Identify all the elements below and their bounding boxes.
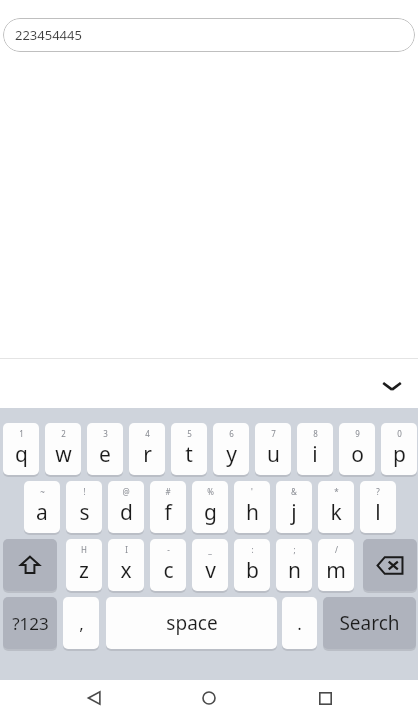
button[interactable]: 1: [3, 423, 39, 475]
staticText: y: [226, 440, 237, 469]
button[interactable]: 0: [381, 423, 417, 475]
staticText: 3: [103, 428, 108, 439]
button[interactable]: %: [192, 481, 228, 533]
staticText: :: [251, 544, 254, 555]
staticText: x: [120, 556, 132, 585]
staticText: g: [204, 498, 217, 527]
staticText: 2: [61, 428, 66, 439]
staticText: m: [326, 556, 346, 585]
staticText: 5: [187, 428, 192, 439]
staticText: e: [99, 440, 111, 469]
button[interactable]: ?123: [3, 597, 57, 649]
staticText: w: [55, 440, 72, 469]
staticText: -: [167, 544, 170, 555]
staticText: z: [79, 556, 89, 585]
staticText: H: [81, 544, 87, 555]
button[interactable]: Recent apps: [303, 680, 347, 716]
staticText: b: [246, 556, 259, 585]
button[interactable]: ?: [360, 481, 396, 533]
button[interactable]: space: [106, 597, 277, 649]
button[interactable]: 3: [87, 423, 123, 475]
staticText: 7: [271, 428, 276, 439]
button[interactable]: ,: [63, 597, 99, 649]
button[interactable]: H: [66, 539, 102, 591]
staticText: ,: [79, 612, 84, 635]
staticText: k: [330, 498, 342, 527]
staticText: #: [165, 486, 171, 497]
button[interactable]: ~: [24, 481, 60, 533]
staticText: n: [288, 556, 301, 585]
staticText: &: [291, 486, 297, 497]
staticText: ?: [376, 486, 380, 497]
staticText: v: [205, 556, 216, 585]
staticText: d: [120, 498, 133, 527]
staticText: u: [267, 440, 280, 469]
button[interactable]: 6: [213, 423, 249, 475]
staticText: 1: [19, 428, 24, 439]
staticText: ': [251, 486, 253, 497]
button[interactable]: #: [150, 481, 186, 533]
button[interactable]: !: [66, 481, 102, 533]
button[interactable]: ;: [276, 539, 312, 591]
staticText: I: [125, 544, 128, 555]
staticText: r: [143, 440, 152, 469]
staticText: ?123: [12, 612, 49, 635]
staticText: q: [15, 440, 28, 469]
staticText: t: [185, 440, 193, 469]
button[interactable]: .: [282, 597, 317, 649]
staticText: p: [393, 440, 406, 469]
button[interactable]: 223454445: [3, 18, 415, 52]
staticText: o: [351, 440, 364, 469]
staticText: Search: [339, 610, 400, 636]
button[interactable]: 4: [129, 423, 165, 475]
staticText: 9: [355, 428, 360, 439]
button[interactable]: :: [234, 539, 270, 591]
staticText: !: [83, 486, 86, 497]
button[interactable]: Hide keyboard: [374, 368, 410, 404]
button[interactable]: I: [108, 539, 144, 591]
button[interactable]: Shift: [3, 539, 57, 591]
staticText: @: [122, 486, 130, 497]
button[interactable]: Search: [323, 597, 416, 649]
staticText: /: [335, 544, 338, 555]
staticText: a: [36, 498, 48, 527]
staticText: 6: [229, 428, 234, 439]
staticText: l: [375, 498, 381, 527]
staticText: 4: [145, 428, 150, 439]
button[interactable]: 8: [297, 423, 333, 475]
staticText: s: [79, 498, 90, 527]
button[interactable]: Home: [187, 680, 231, 716]
staticText: space: [166, 610, 218, 636]
staticText: i: [312, 440, 318, 469]
button[interactable]: -: [150, 539, 186, 591]
button[interactable]: ': [234, 481, 270, 533]
button[interactable]: _: [192, 539, 228, 591]
staticText: _: [208, 544, 212, 555]
staticText: f: [164, 498, 172, 527]
button[interactable]: Backspace: [363, 539, 417, 591]
staticText: 223454445: [15, 26, 82, 44]
staticText: .: [297, 612, 302, 635]
staticText: c: [163, 556, 174, 585]
staticText: ;: [293, 544, 296, 555]
button[interactable]: 9: [339, 423, 375, 475]
button[interactable]: @: [108, 481, 144, 533]
staticText: h: [246, 498, 259, 527]
button[interactable]: *: [318, 481, 354, 533]
button[interactable]: 7: [255, 423, 291, 475]
button[interactable]: /: [318, 539, 354, 591]
button[interactable]: Back: [72, 680, 116, 716]
staticText: ~: [40, 486, 45, 497]
staticText: 0: [397, 428, 402, 439]
staticText: 8: [313, 428, 318, 439]
button[interactable]: &: [276, 481, 312, 533]
button[interactable]: 5: [171, 423, 207, 475]
button[interactable]: 2: [45, 423, 81, 475]
staticText: %: [207, 486, 214, 497]
staticText: *: [334, 486, 339, 497]
staticText: j: [291, 498, 297, 527]
